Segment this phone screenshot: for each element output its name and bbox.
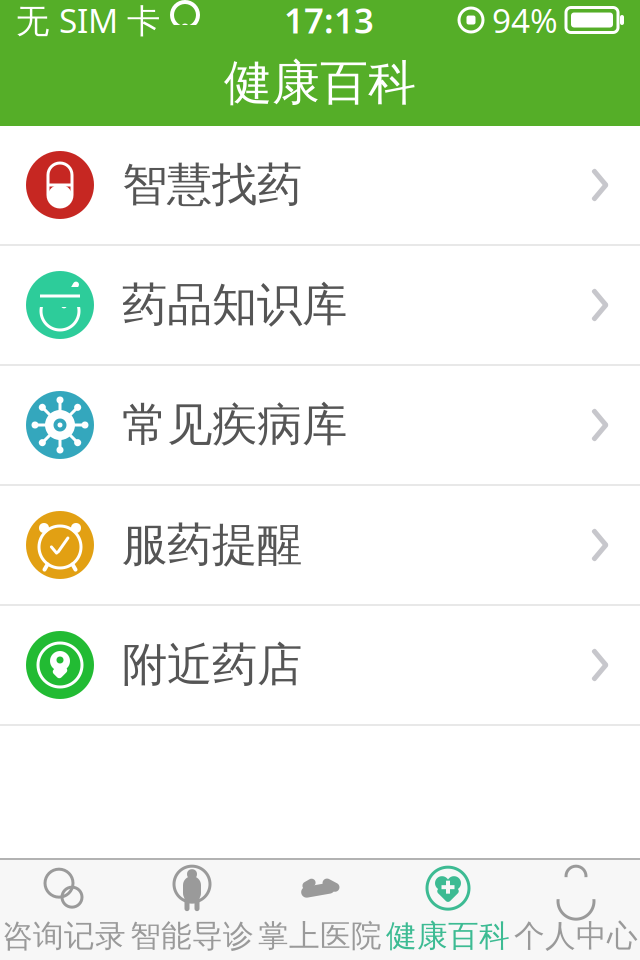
button[interactable]: 咨询记录 <box>0 860 128 960</box>
staticText: 94% <box>492 0 558 42</box>
staticText: 附近药店 <box>122 637 302 693</box>
button[interactable]: 智能导诊 <box>128 860 256 960</box>
staticText: 健康百科 <box>386 917 510 955</box>
staticText: 掌上医院 <box>258 917 382 955</box>
staticText: 咨询记录 <box>2 917 126 955</box>
staticText: 个人中心 <box>514 917 638 955</box>
button[interactable]: 常见疾病库 <box>0 366 640 484</box>
button[interactable]: 掌上医院 <box>256 860 384 960</box>
staticText: 智能导诊 <box>130 917 254 955</box>
staticText: 无 SIM 卡 <box>16 0 160 42</box>
staticText: 17:13 <box>284 0 374 43</box>
staticText: 智慧找药 <box>122 157 302 213</box>
staticText: 常见疾病库 <box>122 397 347 453</box>
button[interactable]: 附近药店 <box>0 606 640 724</box>
staticText: 服药提醒 <box>122 517 302 573</box>
button[interactable]: 服药提醒 <box>0 486 640 604</box>
button[interactable]: 智慧找药 <box>0 126 640 244</box>
button[interactable]: 药品知识库 <box>0 246 640 364</box>
button[interactable]: 健康百科 <box>384 860 512 960</box>
button[interactable]: 个人中心 <box>512 860 640 960</box>
staticText: 药品知识库 <box>122 277 347 333</box>
staticText: 健康百科 <box>224 53 416 112</box>
